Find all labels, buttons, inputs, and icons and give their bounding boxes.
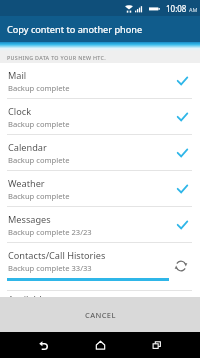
button[interactable]: Available [0, 293, 200, 297]
button[interactable]: Home [80, 332, 120, 358]
button[interactable]: CANCEL [0, 297, 200, 332]
staticText: Clock [8, 105, 32, 118]
button[interactable]: Back [20, 332, 60, 358]
staticText: Contacts/Call Histories [8, 249, 106, 262]
staticText: Calendar [8, 141, 47, 154]
staticText: Mail [8, 69, 27, 82]
button[interactable]: Mail [0, 63, 200, 99]
button[interactable]: Contacts/Call Histories [0, 243, 200, 291]
staticText: Backup complete [8, 155, 70, 165]
button[interactable]: Weather [0, 171, 200, 207]
button[interactable]: Messages [0, 207, 200, 243]
button[interactable]: Clock [0, 99, 200, 135]
staticText: Messages [8, 213, 51, 226]
staticText: Available [8, 293, 47, 297]
staticText: CANCEL [85, 310, 116, 320]
button[interactable]: Recent apps [140, 332, 180, 358]
staticText: Backup complete [8, 191, 70, 201]
staticText: Weather [8, 177, 45, 190]
staticText: Backup complete [8, 119, 70, 129]
staticText: 10:08 [166, 3, 187, 14]
staticText: PUSHING DATA TO YOUR NEW HTC. [7, 54, 107, 61]
staticText: Backup complete [8, 83, 70, 93]
button[interactable]: Copy content to another phone [0, 16, 200, 42]
staticText: Copy content to another phone [7, 23, 143, 36]
staticText: AM [189, 6, 198, 13]
button[interactable]: Calendar [0, 135, 200, 171]
staticText: Backup complete 23/23 [8, 227, 92, 237]
staticText: Backup complete 33/33 [8, 263, 92, 273]
